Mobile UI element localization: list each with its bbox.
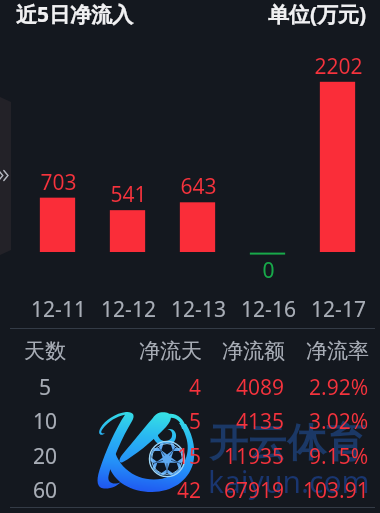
- staticText: 11935: [224, 442, 285, 468]
- button[interactable]: 20: [0, 442, 380, 468]
- staticText: 4089: [236, 373, 285, 399]
- staticText: 净流额: [222, 338, 285, 364]
- staticText: 3.02%: [309, 407, 369, 433]
- staticText: 12-16: [241, 295, 296, 324]
- button[interactable]: 10: [0, 407, 380, 433]
- button[interactable]: 单位(万元): [268, 0, 367, 29]
- staticText: 60: [33, 476, 58, 502]
- staticText: 12-13: [171, 295, 226, 324]
- staticText: 20: [33, 442, 58, 468]
- staticText: 单位(万元): [268, 0, 367, 29]
- button[interactable]: 60: [0, 476, 380, 502]
- staticText: 天数: [24, 338, 66, 364]
- staticText: 0: [262, 256, 275, 285]
- staticText: 4: [189, 373, 202, 399]
- button[interactable]: 天数: [0, 338, 380, 364]
- staticText: 42: [177, 476, 202, 502]
- staticText: 2202: [314, 52, 363, 81]
- staticText: 703: [40, 168, 77, 197]
- staticText: 10: [33, 407, 58, 433]
- staticText: 9.15%: [309, 442, 369, 468]
- staticText: 近5日净流入: [16, 0, 134, 29]
- button[interactable]: 5: [0, 373, 380, 399]
- staticText: 643: [180, 172, 217, 201]
- button[interactable]: Expand side panel: [0, 96, 12, 257]
- staticText: 开云体育: [209, 418, 365, 467]
- staticText: 541: [110, 180, 147, 209]
- staticText: 12-11: [31, 295, 86, 324]
- staticText: 2.92%: [309, 373, 369, 399]
- staticText: 5: [189, 407, 202, 433]
- staticText: 净流天: [139, 338, 202, 364]
- staticText: 15: [177, 442, 202, 468]
- staticText: 4135: [236, 407, 285, 433]
- staticText: kaiyun.com: [208, 461, 370, 502]
- staticText: 5: [39, 373, 52, 399]
- button[interactable]: 近5日净流入: [16, 0, 134, 29]
- staticText: 12-17: [311, 295, 366, 324]
- staticText: 12-12: [101, 295, 156, 324]
- staticText: 净流率: [306, 338, 369, 364]
- staticText: 67919: [224, 476, 285, 502]
- staticText: 103.91: [303, 476, 369, 502]
